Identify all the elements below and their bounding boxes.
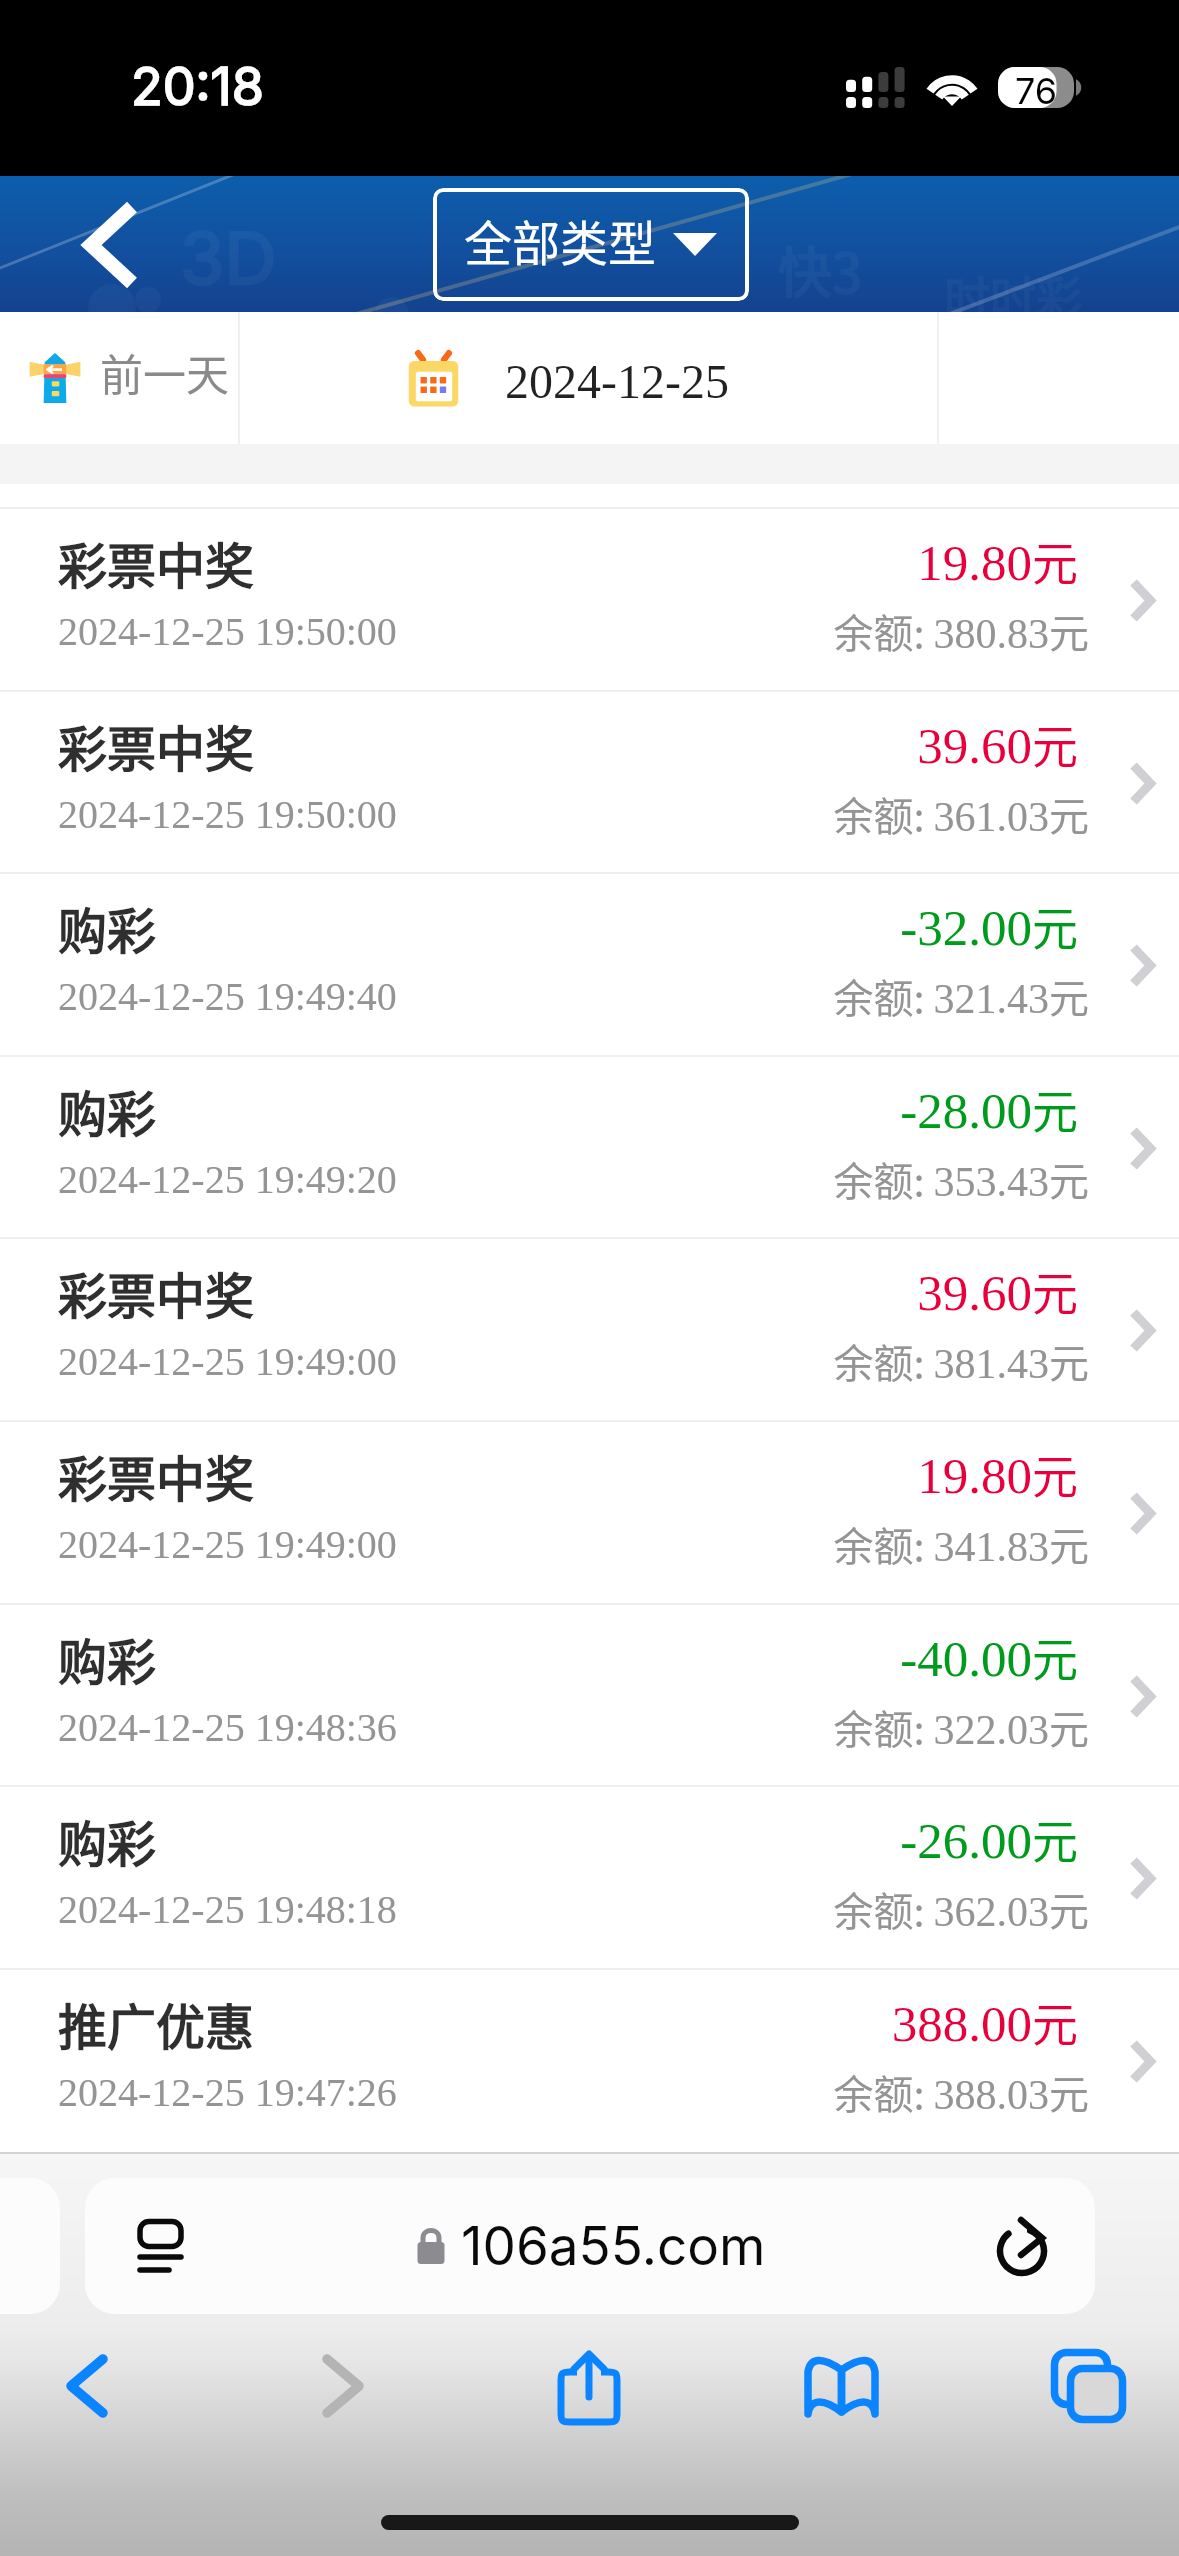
staticText: 388.00元 bbox=[0, 1988, 1078, 2055]
staticText: 39.60元 bbox=[0, 710, 1078, 777]
staticText: 2024-12-25 19:49:00 bbox=[58, 1339, 397, 1383]
staticText: 快3 bbox=[778, 230, 862, 308]
staticText: 39.60元 bbox=[0, 1257, 1078, 1324]
button[interactable]: Tabs bbox=[1040, 2350, 1140, 2440]
staticText: 余额: 321.43元 bbox=[0, 967, 1089, 1025]
button[interactable]: Bookmarks bbox=[793, 2350, 893, 2440]
staticText: 购彩 bbox=[58, 1805, 157, 1876]
staticText: 购彩 bbox=[58, 1075, 157, 1146]
staticText: 19.80元 bbox=[0, 1440, 1078, 1507]
button[interactable]: 购彩 bbox=[0, 1055, 1179, 1238]
staticText: 余额: 362.03元 bbox=[0, 1880, 1089, 1938]
button[interactable]: 购彩 bbox=[0, 1785, 1179, 1968]
button[interactable]: 全部类型 bbox=[433, 188, 749, 301]
staticText: 余额: 381.43元 bbox=[0, 1332, 1089, 1390]
staticText: 余额: 388.03元 bbox=[0, 2063, 1089, 2121]
staticText: 余额: 341.83元 bbox=[0, 1515, 1089, 1573]
staticText: 106a55.com bbox=[461, 2214, 766, 2278]
staticText: -28.00元 bbox=[0, 1075, 1078, 1142]
staticText: -32.00元 bbox=[0, 892, 1078, 959]
staticText: -40.00元 bbox=[0, 1623, 1078, 1690]
staticText: 3D bbox=[180, 214, 277, 301]
button[interactable]: Share bbox=[545, 2350, 645, 2440]
staticText: 2024-12-25 19:49:40 bbox=[58, 974, 397, 1018]
staticText: 2024-12-25 19:48:18 bbox=[58, 1887, 397, 1931]
button[interactable]: Page settings bbox=[85, 2178, 1095, 2314]
button[interactable]: 2024-12-25 bbox=[240, 312, 937, 444]
staticText: 76 bbox=[1010, 69, 1062, 113]
staticText: 余额: 380.83元 bbox=[0, 602, 1089, 660]
staticText: 购彩 bbox=[58, 892, 157, 963]
staticText: 彩票中奖 bbox=[58, 710, 255, 781]
staticText: 2024-12-25 19:50:00 bbox=[58, 792, 397, 836]
button[interactable]: 购彩 bbox=[0, 872, 1179, 1055]
button[interactable]: 推广优惠 bbox=[0, 1968, 1179, 2151]
other: Reload bbox=[999, 2217, 1049, 2275]
button[interactable]: 彩票中奖 bbox=[0, 1420, 1179, 1603]
staticText: 全部类型 bbox=[464, 205, 657, 275]
button[interactable]: Forward bbox=[300, 2350, 400, 2440]
button[interactable]: 前一天 bbox=[0, 312, 238, 444]
staticText: 时时彩 bbox=[944, 262, 1082, 312]
staticText: 余额: 361.03元 bbox=[0, 785, 1089, 843]
staticText: 推广优惠 bbox=[58, 1988, 255, 2059]
button[interactable]: 购彩 bbox=[0, 1603, 1179, 1786]
button[interactable]: 彩票中奖 bbox=[0, 507, 1179, 690]
button[interactable]: 彩票中奖 bbox=[0, 1237, 1179, 1420]
staticText: 前一天 bbox=[100, 341, 229, 403]
staticText: 2024-12-25 bbox=[505, 355, 729, 408]
staticText: 2024-12-25 19:49:00 bbox=[58, 1522, 397, 1566]
staticText: -26.00元 bbox=[0, 1805, 1078, 1872]
staticText: 20:18 bbox=[131, 55, 264, 118]
staticText: 2024-12-25 19:47:26 bbox=[58, 2070, 397, 2114]
button[interactable]: Back bbox=[56, 188, 160, 298]
staticText: 彩票中奖 bbox=[58, 1440, 255, 1511]
staticText: 19.80元 bbox=[0, 527, 1078, 594]
other: Page settings bbox=[137, 2219, 183, 2273]
staticText: 余额: 353.43元 bbox=[0, 1150, 1089, 1208]
staticText: 2024-12-25 19:50:00 bbox=[58, 609, 397, 653]
button[interactable]: 彩票中奖 bbox=[0, 690, 1179, 873]
button[interactable]: Back bbox=[44, 2350, 144, 2440]
staticText: 购彩 bbox=[58, 1623, 157, 1694]
staticText: 彩票中奖 bbox=[58, 527, 255, 598]
staticText: 2024-12-25 19:48:36 bbox=[58, 1705, 397, 1749]
staticText: 2024-12-25 19:49:20 bbox=[58, 1157, 397, 1201]
staticText: 彩票中奖 bbox=[58, 1257, 255, 1328]
staticText: 余额: 322.03元 bbox=[0, 1698, 1089, 1756]
